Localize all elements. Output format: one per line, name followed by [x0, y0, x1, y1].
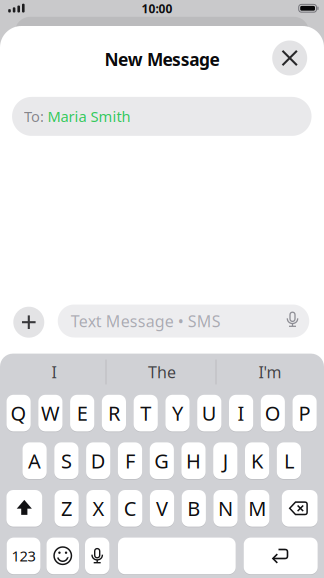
staticText: U [202, 400, 217, 426]
button[interactable] [85, 538, 109, 574]
staticText: O [265, 400, 281, 426]
staticText: F [125, 447, 135, 474]
button[interactable] [118, 538, 236, 574]
staticText: C [124, 495, 137, 522]
staticText: J [223, 447, 228, 474]
button[interactable]: R [102, 395, 126, 431]
button[interactable]: J [213, 442, 237, 479]
staticText: Maria Smith [48, 107, 131, 126]
staticText: V [156, 495, 168, 522]
button[interactable]: O [261, 395, 285, 431]
button[interactable]: Text Message • SMS [58, 304, 309, 337]
staticText: D [91, 447, 106, 474]
button[interactable]: I'm [220, 355, 320, 388]
staticText: I [51, 361, 56, 383]
staticText: K [251, 447, 263, 474]
staticText: E [77, 400, 88, 426]
button[interactable] [6, 490, 42, 527]
button[interactable]: W [38, 395, 62, 431]
staticText: L [284, 447, 294, 474]
staticText: 10:00 [141, 1, 172, 16]
button[interactable]: I [4, 355, 104, 388]
staticText: R [108, 400, 120, 426]
staticText: W [41, 400, 60, 426]
button[interactable]: Q [6, 395, 31, 431]
button[interactable] [282, 490, 318, 527]
staticText: X [92, 495, 104, 522]
staticText: H [186, 447, 201, 474]
staticText: P [299, 400, 311, 426]
button[interactable]: C [118, 490, 142, 527]
button[interactable]: The [112, 355, 212, 388]
staticText: To: [24, 107, 44, 126]
button[interactable]: I [229, 395, 253, 431]
button[interactable]: U [197, 395, 221, 431]
button[interactable] [46, 538, 79, 574]
button[interactable] [13, 307, 44, 338]
button[interactable] [282, 308, 302, 332]
button[interactable]: V [150, 490, 174, 527]
staticText: S [61, 447, 72, 474]
button[interactable]: To: [12, 97, 312, 136]
button[interactable]: 123 [7, 538, 40, 574]
staticText: G [154, 447, 169, 474]
staticText: 123 [12, 546, 36, 566]
button[interactable] [244, 538, 318, 574]
button[interactable]: Z [54, 490, 79, 527]
button[interactable]: D [86, 442, 110, 479]
staticText: B [187, 495, 200, 522]
staticText: A [28, 447, 41, 474]
button[interactable]: K [245, 442, 269, 479]
button[interactable]: X [86, 490, 110, 527]
staticText: M [248, 495, 266, 522]
button[interactable] [272, 40, 307, 75]
button[interactable]: N [213, 490, 238, 527]
button[interactable]: E [70, 395, 94, 431]
staticText: Text Message • SMS [71, 310, 221, 332]
button[interactable]: T [134, 395, 158, 431]
staticText: I [238, 400, 245, 426]
button[interactable]: S [54, 442, 78, 479]
button[interactable]: Y [165, 395, 190, 431]
button[interactable]: F [118, 442, 142, 479]
staticText: New Message [104, 48, 219, 71]
button[interactable]: G [150, 442, 174, 479]
button[interactable]: M [245, 490, 269, 527]
staticText: Q [11, 400, 27, 426]
button[interactable]: H [181, 442, 206, 479]
button[interactable]: P [292, 395, 317, 431]
staticText: T [140, 400, 151, 426]
staticText: Z [61, 495, 72, 522]
button[interactable]: B [182, 490, 206, 527]
staticText: Y [172, 400, 183, 426]
staticText: The [148, 361, 176, 383]
staticText: I'm [258, 361, 281, 383]
button[interactable]: L [277, 442, 301, 479]
staticText: N [218, 495, 233, 522]
button[interactable]: A [22, 442, 47, 479]
